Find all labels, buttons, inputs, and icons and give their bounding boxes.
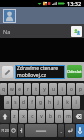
button[interactable]: Emoji <box>10 124 17 137</box>
staticText: y <box>43 86 46 93</box>
button[interactable]: y <box>40 83 48 95</box>
staticText: l <box>75 99 77 106</box>
button[interactable]: u <box>49 83 57 95</box>
button[interactable]: q <box>0 83 7 95</box>
staticText: h <box>48 99 51 106</box>
staticText: q <box>2 86 5 93</box>
button[interactable]: x <box>19 110 27 123</box>
staticText: 13:32 <box>67 0 82 7</box>
staticText: c <box>31 113 34 120</box>
button[interactable]: n <box>55 110 63 123</box>
staticText: z <box>13 113 16 120</box>
button[interactable]: Pick contact <box>71 26 82 37</box>
button[interactable]: Odeslat <box>67 65 82 78</box>
staticText: r <box>27 86 29 93</box>
staticText: i <box>61 86 63 93</box>
staticText: f <box>31 99 33 106</box>
button[interactable]: t <box>32 83 39 95</box>
button[interactable]: s <box>12 96 19 109</box>
button[interactable]: j <box>54 96 62 109</box>
button[interactable]: z <box>11 110 18 123</box>
button[interactable]: r <box>24 83 31 95</box>
staticText: o <box>70 86 73 93</box>
staticText: v <box>40 113 43 120</box>
button[interactable]: o <box>67 83 75 95</box>
staticText: m <box>66 113 71 120</box>
button[interactable]: Attach <box>2 66 13 78</box>
button[interactable]: Shift <box>0 110 10 123</box>
button[interactable]: d <box>20 96 27 109</box>
staticText: mobilovej.cz <box>17 72 47 79</box>
button[interactable]: Na <box>0 24 70 38</box>
staticText: t <box>35 86 37 93</box>
staticText: a <box>6 99 9 106</box>
button[interactable]: v <box>37 110 45 123</box>
staticText: g <box>39 99 42 106</box>
staticText: s <box>14 99 17 106</box>
button[interactable]: l <box>72 96 80 109</box>
staticText: Zdravíme ctenare <box>17 65 59 72</box>
staticText: x <box>22 113 25 120</box>
button[interactable]: . <box>58 124 64 137</box>
staticText: n <box>58 113 61 120</box>
staticText: Na <box>3 28 11 35</box>
button[interactable]: k <box>63 96 71 109</box>
staticText: d <box>22 99 25 106</box>
button[interactable]: Contact photo <box>4 10 15 22</box>
button[interactable]: Zdravíme ctenare <box>15 65 65 79</box>
button[interactable]: ?123 <box>0 124 9 137</box>
button[interactable]: Next <box>18 124 24 137</box>
button[interactable]: p <box>76 83 84 95</box>
staticText: Odeslat <box>67 69 82 74</box>
staticText: k <box>66 99 69 106</box>
button[interactable]: a <box>4 96 11 109</box>
button[interactable]: b <box>46 110 54 123</box>
button[interactable]: Backspace <box>73 110 84 123</box>
staticText: . <box>60 128 62 134</box>
staticText: e <box>18 86 21 93</box>
staticText: u <box>52 86 55 93</box>
button[interactable]: g <box>36 96 44 109</box>
button[interactable]: f <box>28 96 35 109</box>
button[interactable]: Space <box>25 124 57 137</box>
button[interactable]: Voice input <box>76 124 84 137</box>
staticText: p <box>79 86 82 93</box>
button[interactable]: h <box>45 96 53 109</box>
staticText: ?123 <box>1 128 9 133</box>
button[interactable]: m <box>64 110 72 123</box>
staticText: j <box>57 99 59 106</box>
staticText: w <box>10 86 14 93</box>
staticText: b <box>49 113 52 120</box>
button[interactable]: e <box>16 83 23 95</box>
button[interactable]: i <box>58 83 66 95</box>
button[interactable]: c <box>28 110 36 123</box>
button[interactable]: Enter <box>65 124 75 137</box>
button[interactable]: w <box>8 83 15 95</box>
